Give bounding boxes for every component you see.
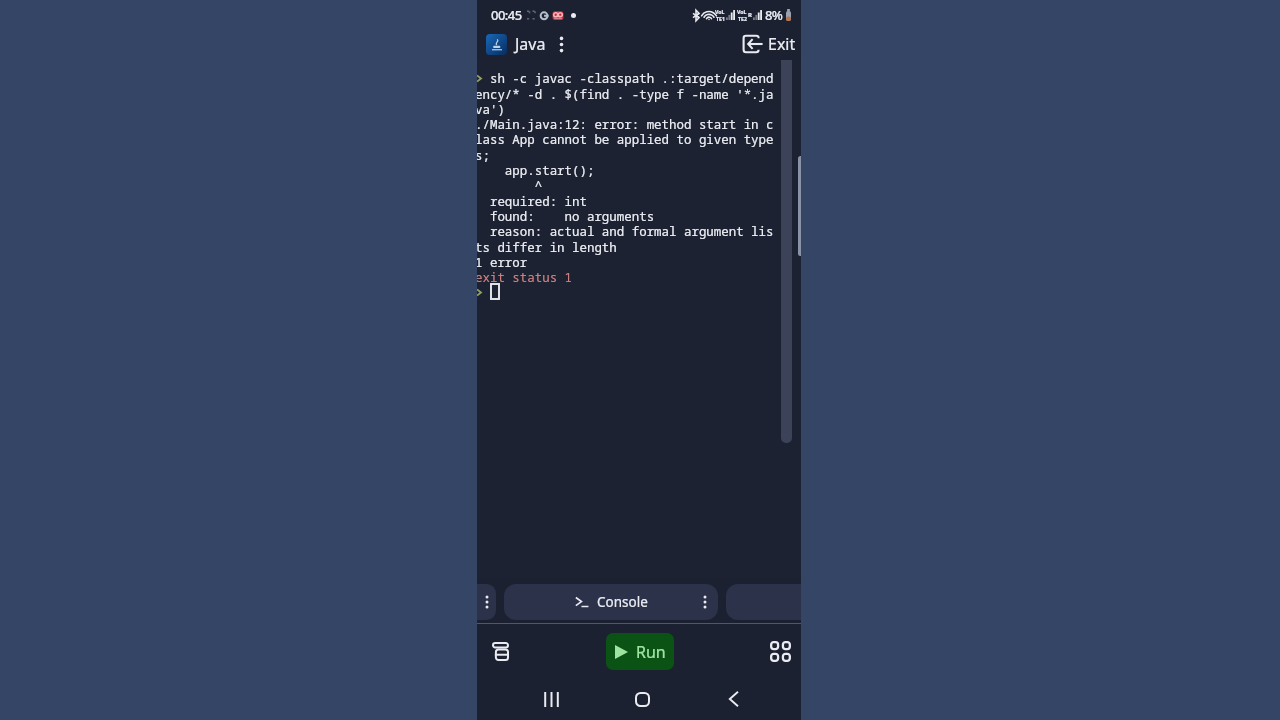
staticText: TE2	[738, 15, 747, 22]
button[interactable]: Back	[714, 680, 752, 718]
staticText: reason: actual and formal argument lis	[477, 223, 774, 240]
button[interactable]: Console	[504, 584, 718, 620]
staticText: Exit	[768, 33, 796, 55]
button[interactable]: Console output	[477, 60, 801, 578]
button[interactable]: Previous tab options	[477, 584, 496, 620]
staticText: Run	[636, 641, 666, 663]
button[interactable]: Console tab options	[692, 584, 718, 620]
staticText: ./Main.java:12: error: method start in c	[477, 116, 774, 133]
button[interactable]: Layout	[483, 634, 517, 668]
staticText: found: no arguments	[477, 208, 655, 225]
staticText: 1 error	[477, 254, 528, 271]
staticText: s;	[477, 147, 490, 164]
staticText: app.start();	[477, 162, 595, 179]
staticText: required: int	[477, 193, 587, 210]
staticText: 8%	[765, 6, 783, 24]
staticText: VoL	[737, 8, 747, 15]
button[interactable]: Home	[623, 680, 661, 718]
staticText: sh -c javac -classpath .:target/depend	[477, 70, 774, 87]
staticText: 00:45	[491, 6, 522, 24]
button[interactable]: Recents	[532, 680, 570, 718]
button[interactable]: Exit	[741, 34, 797, 56]
button[interactable]: Next tab	[726, 584, 801, 620]
staticText: Console	[597, 593, 648, 611]
staticText: ts differ in length	[477, 239, 617, 256]
staticText: Java	[515, 33, 546, 55]
staticText: R	[748, 11, 752, 19]
button[interactable]: More options	[553, 31, 569, 57]
staticText: exit status 1	[477, 269, 573, 286]
staticText: TE1	[716, 15, 725, 22]
staticText: ency/* -d . $(find . -type f -name '*.ja	[477, 86, 774, 103]
button[interactable]: Apps	[763, 634, 797, 668]
staticText: va')	[477, 101, 505, 118]
staticText: VoL	[715, 8, 725, 15]
button[interactable]: Run	[606, 633, 674, 670]
staticText: ^	[477, 177, 543, 194]
staticText	[477, 284, 490, 301]
staticText: lass App cannot be applied to given type	[477, 131, 774, 148]
